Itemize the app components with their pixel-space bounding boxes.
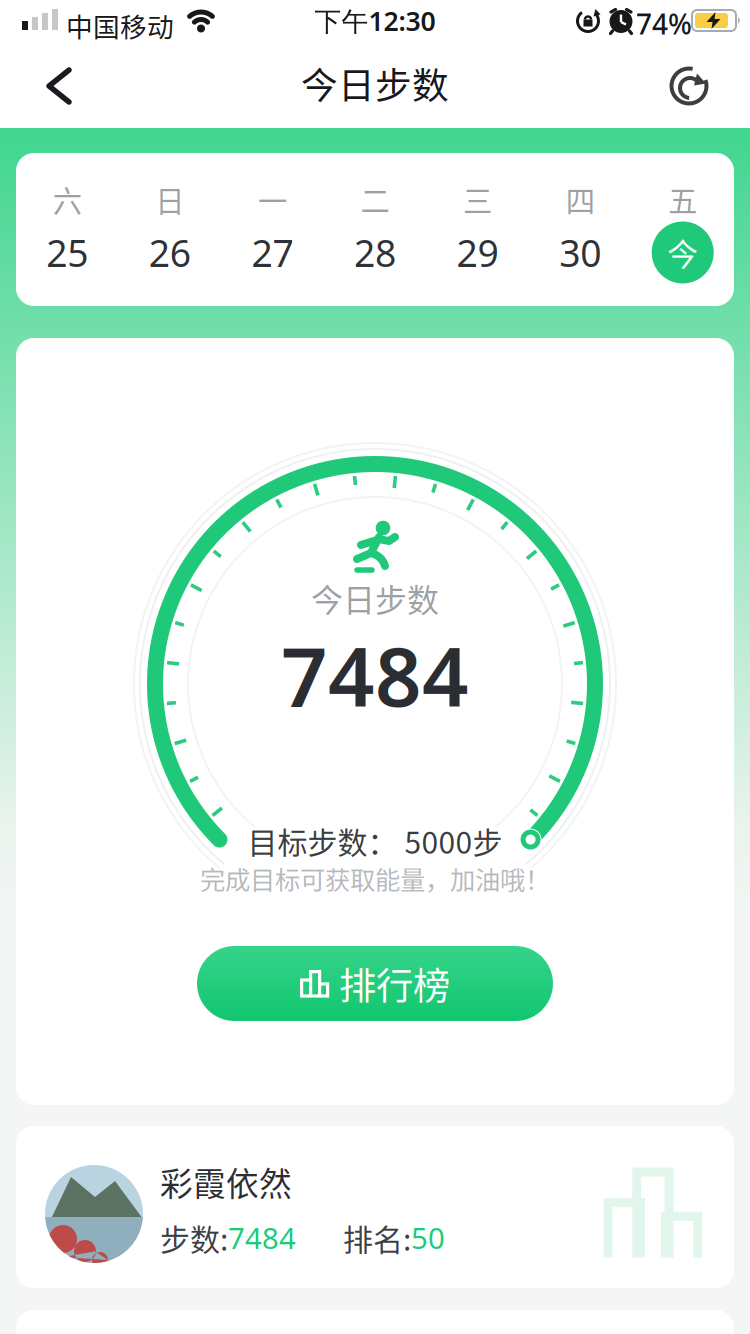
staticText: 50 bbox=[411, 1218, 445, 1257]
staticText: 30 bbox=[559, 228, 601, 277]
staticText: 25 bbox=[46, 228, 88, 277]
button[interactable]: 28 bbox=[344, 221, 406, 283]
staticText: 三 bbox=[463, 178, 492, 220]
staticText: 今 bbox=[667, 230, 698, 275]
staticText: 步数: bbox=[160, 1216, 228, 1259]
staticText: 27 bbox=[251, 228, 293, 277]
staticText: 日 bbox=[155, 178, 184, 220]
staticText: 7484 bbox=[228, 1218, 296, 1257]
staticText: 今日步数 bbox=[301, 56, 449, 110]
button[interactable]: 30 bbox=[549, 221, 611, 283]
staticText: 完成目标可获取能量，加油哦！ bbox=[200, 860, 550, 897]
staticText: 26 bbox=[149, 228, 191, 277]
staticText: 五 bbox=[668, 178, 697, 220]
button[interactable]: 29 bbox=[447, 221, 509, 283]
button[interactable]: 27 bbox=[241, 221, 303, 283]
button[interactable]: Back bbox=[29, 53, 89, 119]
staticText: 排行榜 bbox=[339, 956, 450, 1011]
button[interactable]: 排行榜 bbox=[197, 946, 553, 1021]
staticText: 一 bbox=[258, 178, 287, 220]
staticText: 彩霞依然 bbox=[160, 1158, 292, 1205]
staticText: 目标步数： 5000步 bbox=[247, 819, 502, 862]
staticText: 28 bbox=[354, 228, 396, 277]
button[interactable]: 26 bbox=[139, 221, 201, 283]
staticText: 六 bbox=[53, 178, 82, 220]
staticText: 7484 bbox=[281, 621, 469, 729]
button[interactable]: Refresh bbox=[656, 51, 724, 119]
staticText: 二 bbox=[360, 178, 389, 220]
staticText: 下午12:30 bbox=[314, 3, 435, 38]
staticText: 今日步数 bbox=[311, 575, 439, 621]
staticText: 排名: bbox=[343, 1216, 411, 1259]
staticText: 29 bbox=[457, 228, 499, 277]
staticText: 74% bbox=[636, 5, 692, 42]
button[interactable]: 25 bbox=[36, 221, 98, 283]
staticText: 中国移动 bbox=[66, 6, 174, 45]
staticText: 四 bbox=[566, 178, 595, 220]
button[interactable]: 今 bbox=[652, 221, 714, 283]
